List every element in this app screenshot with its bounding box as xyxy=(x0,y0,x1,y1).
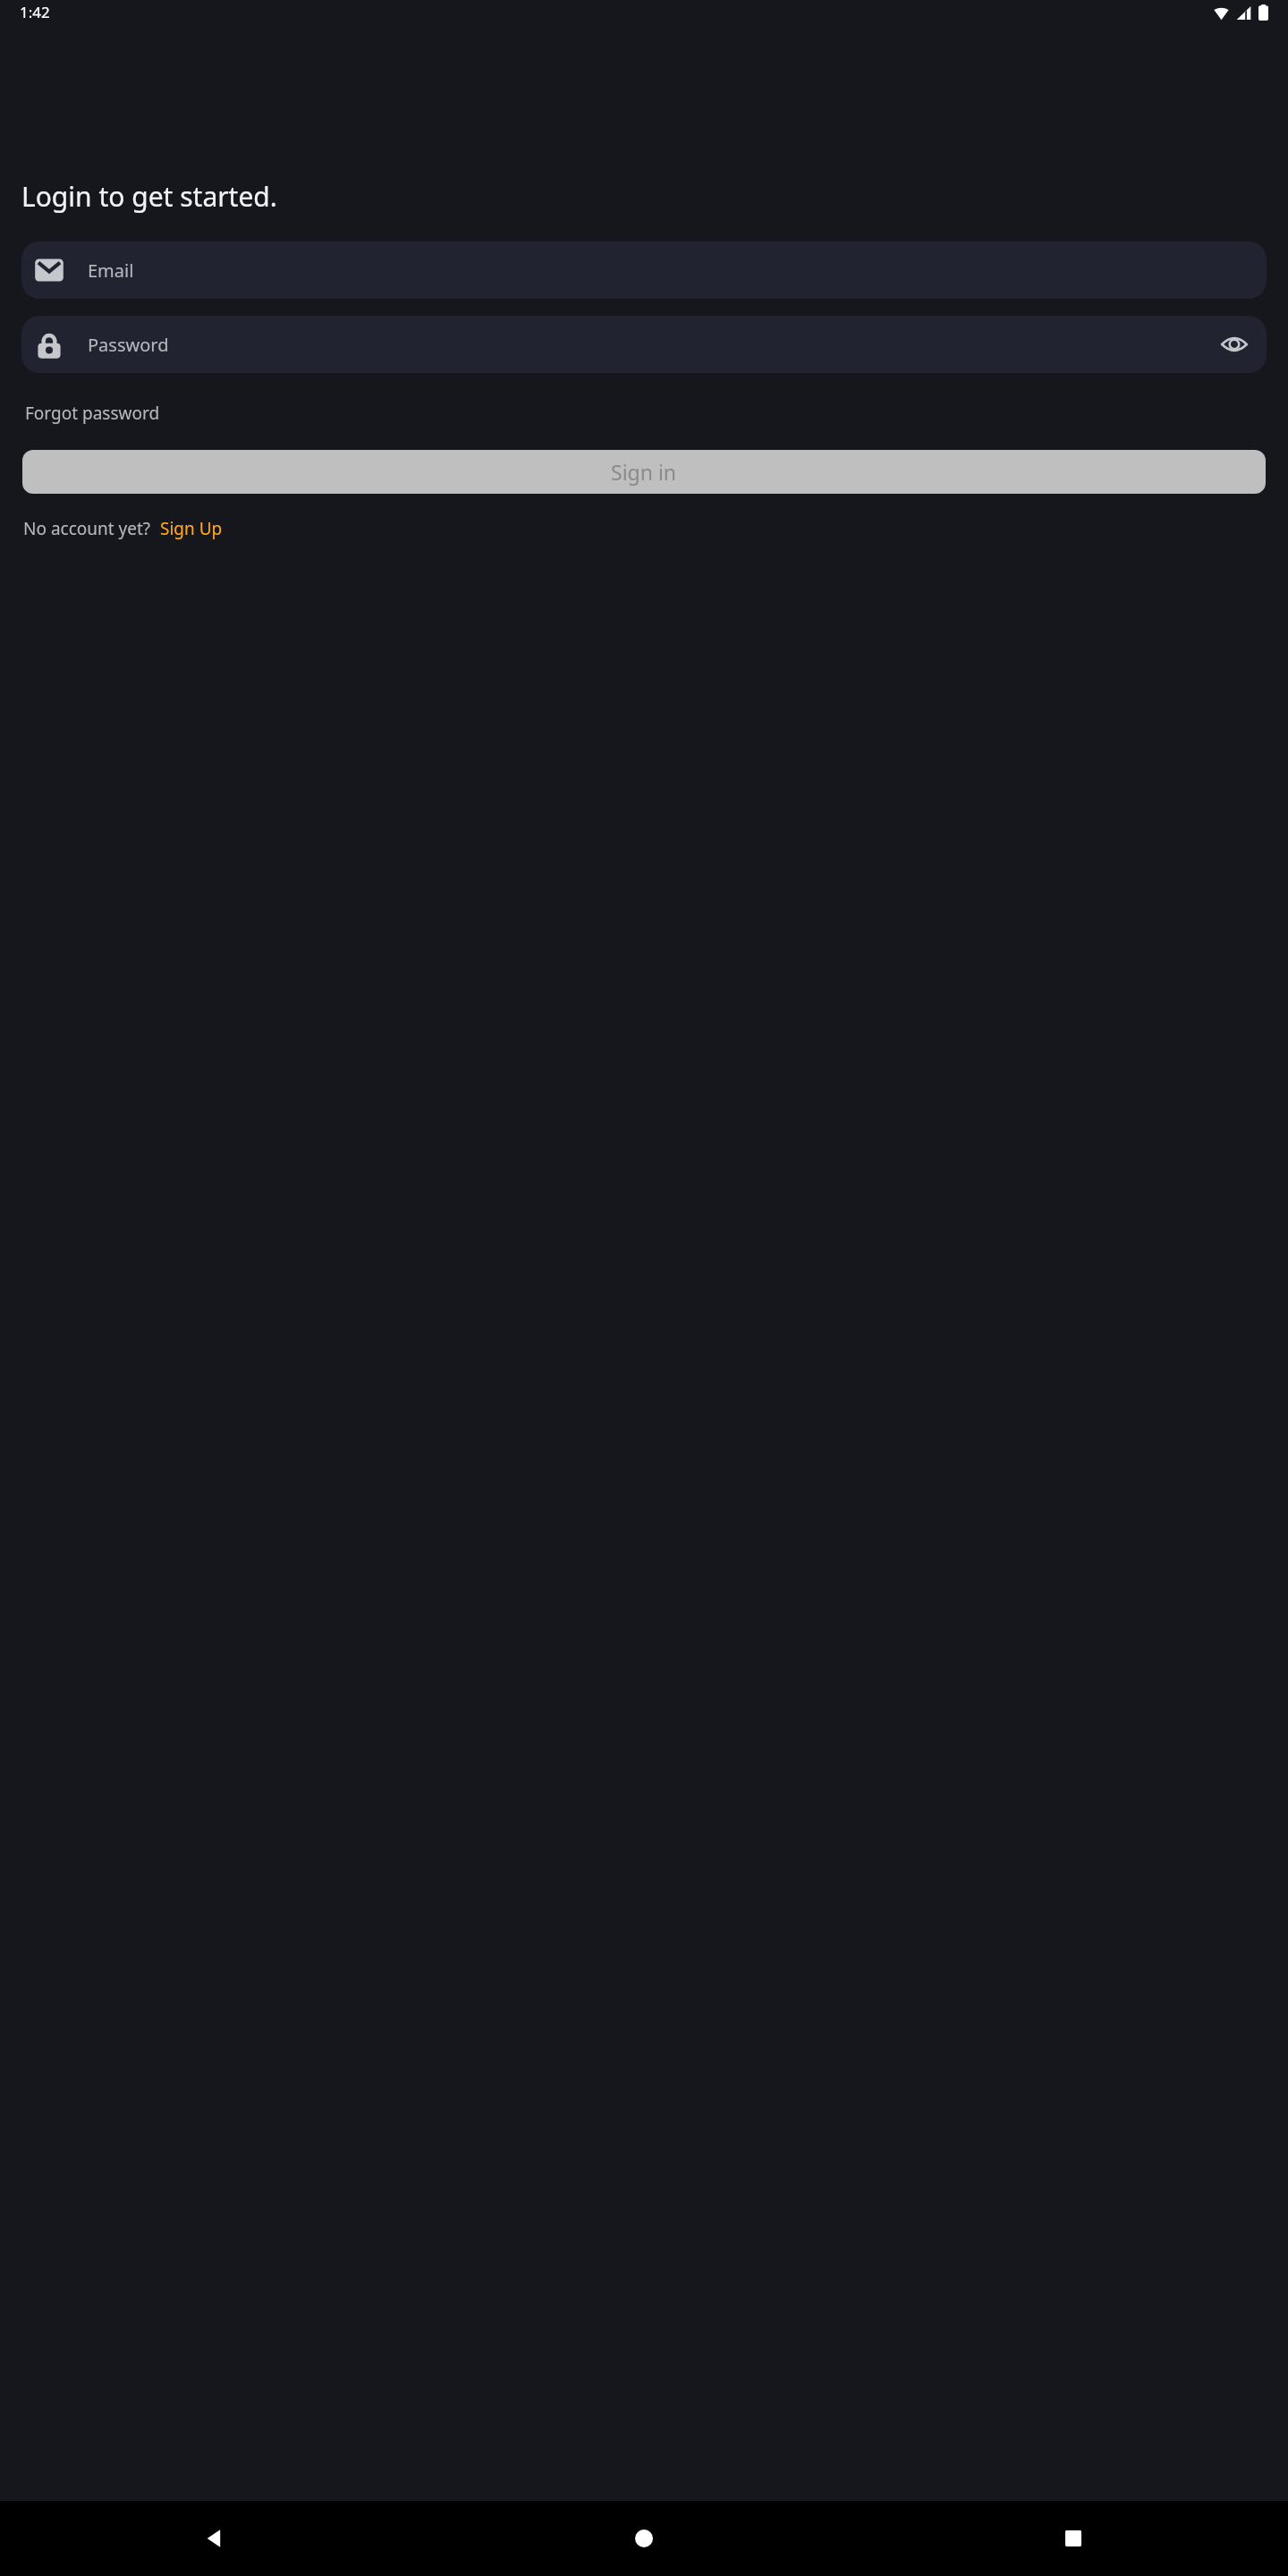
button[interactable]: Email xyxy=(21,241,1267,299)
button[interactable]: Forgot password xyxy=(25,402,160,425)
staticText: Password xyxy=(88,333,169,357)
button[interactable]: Show password xyxy=(1215,325,1254,364)
staticText: Sign Up xyxy=(160,517,223,540)
staticText: Login to get started. xyxy=(21,178,277,215)
staticText: Forgot password xyxy=(25,402,160,425)
button[interactable]: Home xyxy=(429,2501,859,2576)
staticText: Email xyxy=(88,258,134,283)
staticText: 1:42 xyxy=(20,2,50,22)
button[interactable]: Password xyxy=(21,316,1267,373)
button[interactable]: Sign Up xyxy=(160,517,223,540)
staticText: No account yet? xyxy=(23,517,151,540)
staticText: Sign in xyxy=(611,458,677,486)
button[interactable]: Back xyxy=(0,2501,429,2576)
button[interactable]: Sign in xyxy=(22,450,1266,494)
button[interactable]: Recent apps xyxy=(859,2501,1288,2576)
